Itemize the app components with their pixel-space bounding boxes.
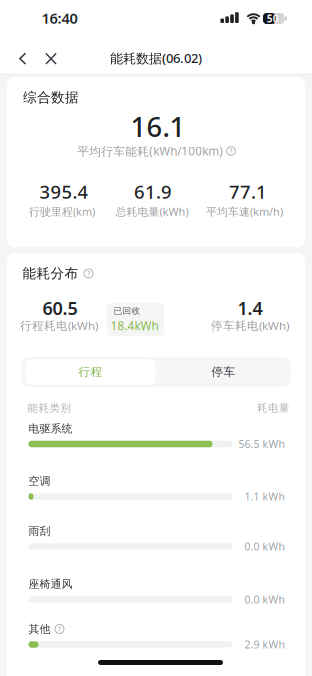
staticText: 60.5 bbox=[42, 296, 77, 320]
button[interactable]: 说明 bbox=[83, 268, 93, 278]
staticText: 395.4 bbox=[39, 179, 88, 204]
staticText: 行驶里程(km) bbox=[29, 204, 95, 219]
staticText: 已回收 bbox=[113, 305, 140, 316]
button[interactable]: 说明 bbox=[226, 146, 236, 156]
button[interactable]: 返回 bbox=[10, 46, 34, 70]
button[interactable]: 关闭 bbox=[39, 46, 63, 70]
staticText: 61.9 bbox=[134, 179, 172, 204]
staticText: 平均车速(km/h) bbox=[206, 204, 283, 219]
staticText: 能耗数据(06.02) bbox=[110, 49, 202, 67]
staticText: ? bbox=[87, 269, 90, 278]
staticText: 总耗电量(kWh) bbox=[115, 204, 188, 219]
staticText: 16:40 bbox=[41, 8, 77, 28]
staticText: 2.9 kWh bbox=[244, 637, 284, 652]
staticText: 50 bbox=[267, 12, 279, 25]
staticText: 1.4 bbox=[237, 296, 262, 320]
staticText: 空调 bbox=[28, 474, 50, 488]
staticText: 平均行车能耗(kWh/100km) bbox=[77, 143, 223, 159]
button[interactable]: 说明 bbox=[54, 624, 64, 634]
staticText: 16.1 bbox=[130, 108, 185, 145]
staticText: 雨刮 bbox=[28, 524, 50, 538]
button[interactable]: 行程 bbox=[25, 359, 155, 384]
staticText: 电驱系统 bbox=[28, 422, 72, 435]
staticText: 停车耗电(kWh) bbox=[211, 318, 289, 333]
staticText: 行程耗电(kWh) bbox=[20, 318, 98, 333]
staticText: 能耗分布 bbox=[22, 265, 78, 282]
staticText: 能耗类别 bbox=[27, 401, 71, 415]
staticText: 耗电量 bbox=[257, 401, 290, 415]
button[interactable]: 停车 bbox=[158, 359, 288, 384]
staticText: ? bbox=[58, 625, 61, 633]
staticText: 行程 bbox=[78, 365, 102, 379]
staticText: ? bbox=[229, 147, 232, 155]
staticText: 18.4kWh bbox=[110, 318, 158, 334]
staticText: 0.0 kWh bbox=[244, 539, 284, 554]
staticText: 其他 bbox=[28, 622, 50, 636]
staticText: 1.1 kWh bbox=[244, 489, 284, 504]
staticText: 56.5 kWh bbox=[238, 437, 284, 451]
staticText: 0.0 kWh bbox=[244, 592, 284, 607]
staticText: 座椅通风 bbox=[28, 577, 72, 591]
staticText: 77.1 bbox=[229, 179, 267, 204]
staticText: 停车 bbox=[211, 365, 235, 379]
staticText: 综合数据 bbox=[23, 89, 79, 106]
